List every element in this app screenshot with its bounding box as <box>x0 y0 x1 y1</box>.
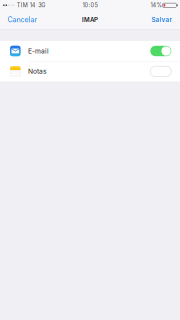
staticText: 3G <box>38 2 45 9</box>
staticText: IMAP <box>82 16 98 23</box>
staticText: Notas <box>28 67 47 75</box>
staticText: 10:05 <box>82 2 97 9</box>
button[interactable]: Cancelar <box>0 12 42 27</box>
staticText: Salvar <box>151 16 171 24</box>
staticText: Cancelar <box>7 15 37 24</box>
button[interactable]: Notas <box>0 61 180 81</box>
button[interactable]: Salvar <box>146 12 180 27</box>
staticText: TIM 14 <box>17 2 36 9</box>
staticText: 14% <box>151 2 162 9</box>
button[interactable]: E-mail <box>0 41 180 61</box>
staticText: E-mail <box>28 47 49 55</box>
